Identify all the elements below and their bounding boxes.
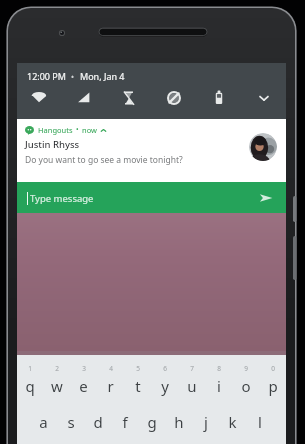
- button[interactable]: i: [205, 374, 232, 397]
- staticText: 6: [163, 364, 167, 373]
- button[interactable]: a: [30, 410, 57, 433]
- button[interactable]: k: [219, 410, 246, 433]
- button[interactable]: f: [111, 410, 138, 433]
- staticText: 0: [271, 364, 275, 373]
- staticText: •: [76, 125, 79, 135]
- staticText: p: [268, 376, 278, 396]
- button[interactable]: y: [151, 374, 178, 397]
- button[interactable]: Battery: [196, 86, 241, 110]
- button[interactable]: q: [17, 374, 43, 397]
- button[interactable]: h: [165, 410, 192, 433]
- staticText: Hangouts: [38, 125, 73, 135]
- button[interactable]: w: [43, 374, 70, 397]
- staticText: now: [82, 125, 97, 135]
- button[interactable]: r: [97, 374, 124, 397]
- staticText: q: [25, 376, 35, 396]
- staticText: a: [39, 412, 48, 432]
- staticText: 4: [109, 364, 113, 373]
- staticText: l: [258, 412, 262, 432]
- button[interactable]: u: [178, 374, 205, 397]
- staticText: 2: [55, 364, 59, 373]
- staticText: f: [122, 412, 128, 432]
- button[interactable]: Mobile signal: [61, 86, 106, 110]
- button[interactable]: Expand quick settings: [241, 86, 286, 110]
- staticText: 5: [136, 364, 140, 373]
- staticText: •: [71, 71, 75, 82]
- button[interactable]: s: [57, 410, 84, 433]
- staticText: Justin Rhyss: [25, 138, 80, 151]
- button[interactable]: Contact photo: [249, 133, 277, 161]
- staticText: o: [241, 376, 251, 396]
- staticText: 3: [82, 364, 86, 373]
- staticText: Mon, Jan 4: [80, 70, 125, 82]
- button[interactable]: Hangouts: [17, 119, 286, 182]
- staticText: u: [187, 376, 197, 396]
- staticText: w: [51, 376, 63, 396]
- staticText: h: [174, 412, 184, 432]
- staticText: Type message: [30, 192, 94, 205]
- staticText: 8: [217, 364, 221, 373]
- staticText: Do you want to go see a movie tonight?: [25, 154, 183, 166]
- staticText: 1: [28, 364, 32, 373]
- button[interactable]: l: [246, 410, 273, 433]
- button[interactable]: Battery saver: [106, 86, 151, 110]
- button[interactable]: d: [84, 410, 111, 433]
- staticText: e: [79, 376, 88, 396]
- staticText: 12:00 PM: [27, 70, 66, 82]
- button[interactable]: Type message: [17, 182, 286, 213]
- button[interactable]: e: [70, 374, 97, 397]
- staticText: 9: [244, 364, 248, 373]
- button[interactable]: Do not disturb: [151, 86, 196, 110]
- button[interactable]: g: [138, 410, 165, 433]
- staticText: y: [161, 376, 169, 396]
- staticText: i: [217, 376, 221, 396]
- button[interactable]: j: [192, 410, 219, 433]
- button[interactable]: Send: [258, 190, 274, 206]
- button[interactable]: p: [259, 374, 286, 397]
- staticText: t: [135, 376, 141, 396]
- staticText: d: [93, 412, 103, 432]
- staticText: k: [228, 412, 237, 432]
- staticText: r: [107, 376, 114, 396]
- button[interactable]: o: [232, 374, 259, 397]
- button[interactable]: t: [124, 374, 151, 397]
- staticText: 7: [190, 364, 194, 373]
- staticText: s: [67, 412, 75, 432]
- staticText: j: [204, 412, 208, 432]
- button[interactable]: Wi-Fi: [17, 86, 61, 110]
- staticText: g: [147, 412, 157, 432]
